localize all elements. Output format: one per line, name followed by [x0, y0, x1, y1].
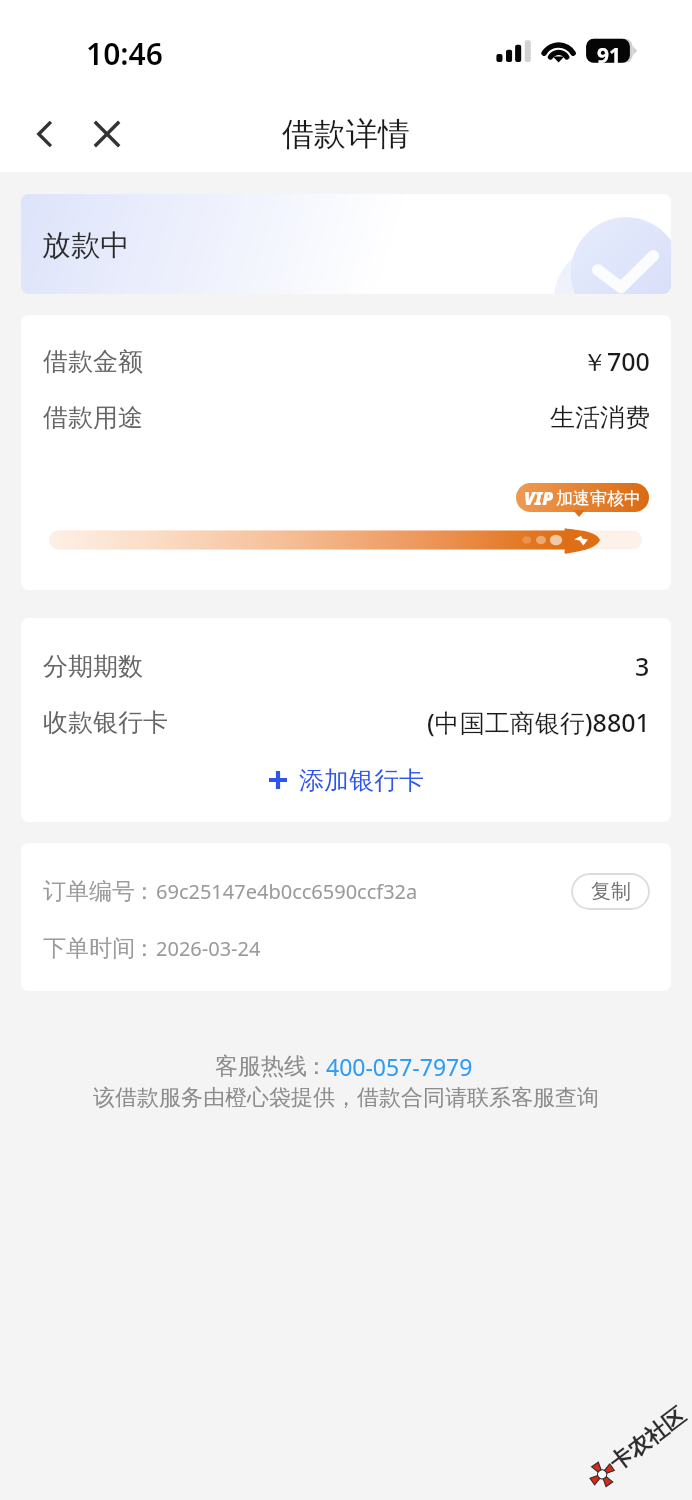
staticText: ：	[133, 877, 156, 906]
staticText: 卡农社区	[604, 1402, 691, 1477]
button[interactable]: Back	[22, 111, 68, 157]
staticText: 借款详情	[282, 114, 410, 154]
staticText: 复制	[591, 879, 631, 904]
staticText: 加速审核中	[556, 488, 641, 509]
staticText: 3	[635, 649, 650, 683]
staticText: ￥700	[582, 344, 650, 378]
staticText: 下单时间	[43, 934, 135, 963]
staticText: 添加银行卡	[299, 765, 424, 796]
staticText: VIP	[524, 486, 554, 510]
button[interactable]: 复制	[571, 873, 650, 910]
staticText: 放款中	[42, 227, 129, 264]
staticText: 借款金额	[43, 346, 143, 377]
button[interactable]: Close	[84, 111, 130, 157]
staticText: 91	[597, 41, 622, 70]
staticText: 该借款服务由橙心袋提供，借款合同请联系客服查询	[93, 1084, 599, 1112]
staticText: 分期期数	[43, 651, 143, 682]
staticText: 生活消费	[550, 402, 650, 433]
staticText: 客服热线	[215, 1052, 307, 1081]
staticText: 69c25147e4b0cc6590ccf32a	[156, 878, 418, 905]
staticText: ：	[133, 934, 156, 963]
button[interactable]: 添加银行卡	[21, 750, 671, 810]
staticText: 订单编号	[43, 877, 135, 906]
staticText: ：	[305, 1052, 328, 1081]
staticText: 2026-03-24	[156, 935, 261, 962]
staticText: 收款银行卡	[43, 707, 168, 738]
button[interactable]: 400-057-7979	[326, 1051, 473, 1082]
staticText: 10:46	[86, 33, 163, 74]
staticText: (中国工商银行)8801	[427, 705, 650, 739]
staticText: 借款用途	[43, 402, 143, 433]
